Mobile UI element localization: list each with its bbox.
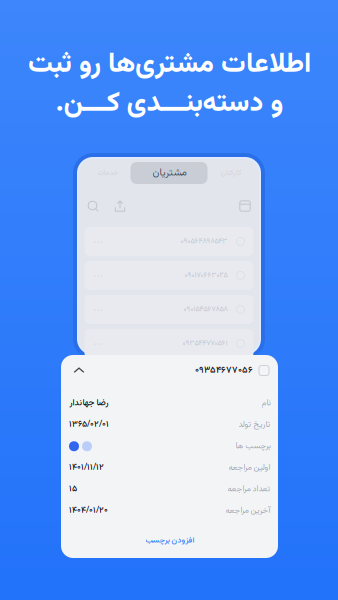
staticText: اولین مراجعه [228,461,270,474]
staticText: ۰۹۰۵۶۴۸۹۸۵۴۳ [180,236,227,247]
staticText: نام [261,397,270,410]
button[interactable]: مشتریان [130,162,207,184]
staticText: آخرین مراجعه [225,504,270,517]
staticText: ۱۴۰۱/۱۱/۱۲ [69,461,104,474]
staticText: ⋯ [93,270,102,281]
button[interactable]: ⋯ [84,295,253,324]
staticText: ⋯ [93,304,102,315]
staticText: رضا جهاندار [69,396,108,410]
button[interactable]: Collapse [70,361,88,379]
staticText: تاریخ تولد [238,418,270,431]
staticText: ۰۹۰۱۷۰۶۶۳۰۲۵ [184,270,227,281]
staticText: و دسته‌بنـــدی کـــن. [55,83,283,125]
staticText: خدمات [97,167,118,179]
staticText: ۱۳۶۵/۰۲/۰۱ [69,418,109,431]
staticText: ۱۵ [69,482,77,496]
button[interactable]: افزودن برچسب [61,529,278,551]
staticText: تعداد مراجعه [227,483,270,496]
button[interactable]: Search [83,196,103,216]
staticText: کارکنان [220,167,240,179]
staticText: ۰۹۳۵۴۴۷۷۰۵۶۱ [182,338,227,349]
button[interactable]: ⋯ [84,227,253,256]
button[interactable]: Export [110,196,130,216]
staticText: ⋯ [93,338,102,349]
staticText: مشتریان [152,165,186,181]
staticText: اطلاعات مشتری‌ها رو ثبت [27,44,310,86]
button[interactable]: ⋯ [84,329,253,358]
staticText: برچسب ها [235,440,270,453]
button[interactable]: Select customer [259,365,269,375]
button[interactable]: Calendar [235,196,255,216]
staticText: ⋯ [93,236,102,247]
staticText: افزودن برچسب [145,534,194,547]
staticText: ۱۴۰۴/۰۱/۲۰ [69,504,108,517]
staticText: ۰۹۳۵۴۶۷۷۰۵۶ [195,363,253,378]
staticText: ۰۹۰۱۵۴۵۶۷۸۵۸ [183,304,227,315]
